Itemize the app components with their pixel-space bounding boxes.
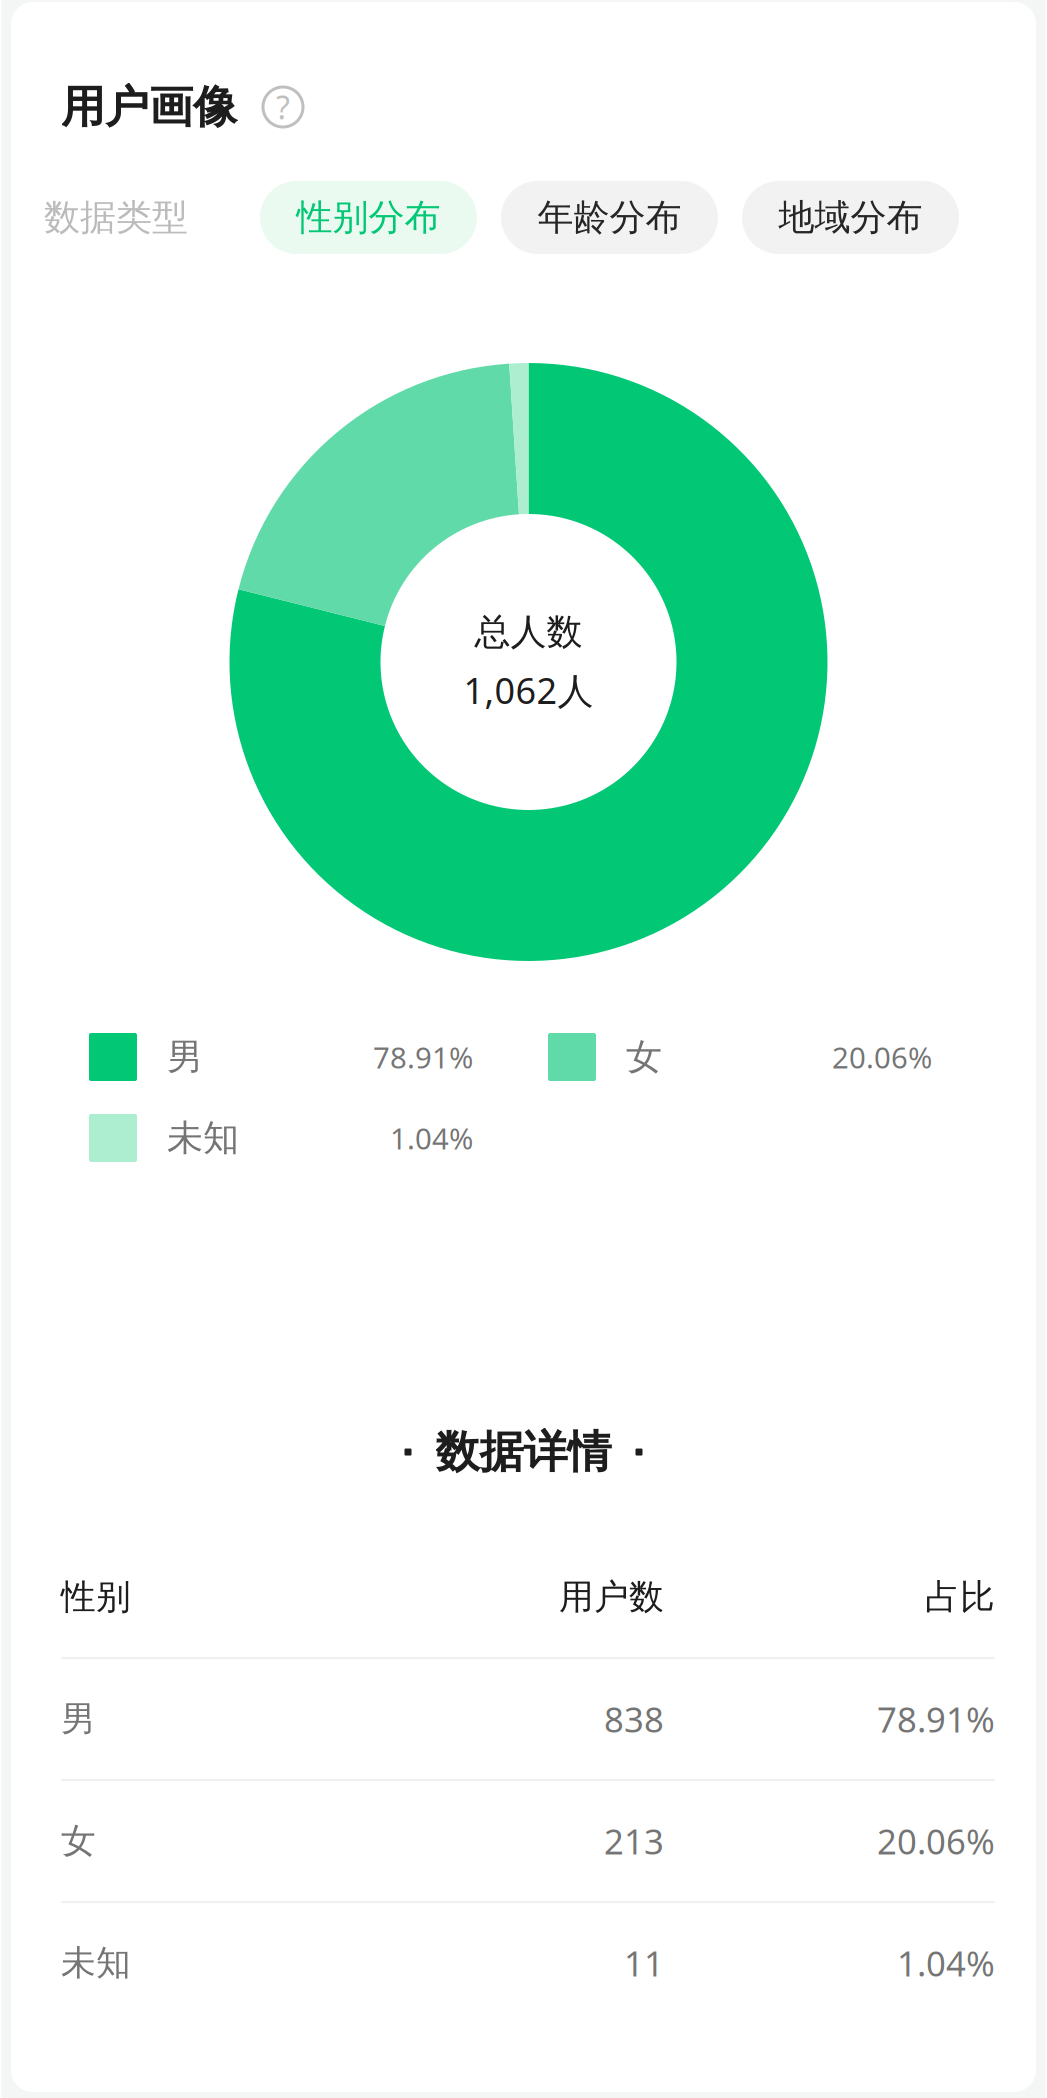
staticText: 女 (626, 1035, 662, 1079)
staticText: 838 (604, 1696, 664, 1742)
button[interactable]: 年龄分布 (501, 181, 718, 254)
staticText: 占比 (925, 1576, 995, 1618)
button[interactable]: 性别分布 (260, 181, 477, 254)
staticText: 用户数 (559, 1576, 664, 1618)
staticText: 未知 (61, 1942, 131, 1984)
staticText: ? (276, 86, 290, 128)
staticText: 女 (61, 1820, 96, 1862)
staticText: 11 (624, 1940, 664, 1986)
staticText: 男 (167, 1035, 203, 1079)
staticText: 用户画像 (61, 80, 237, 134)
staticText: 未知 (167, 1116, 239, 1160)
staticText: 性别 (61, 1576, 131, 1618)
staticText: 20.06% (832, 1037, 932, 1076)
staticText: 年龄分布 (537, 195, 681, 240)
staticText: 213 (604, 1818, 664, 1864)
staticText: 数据类型 (44, 195, 188, 240)
staticText: 1.04% (897, 1940, 995, 1986)
button[interactable]: 地域分布 (742, 181, 959, 254)
staticText: 性别分布 (296, 195, 440, 240)
staticText: 数据详情 (435, 1425, 611, 1479)
staticText: 地域分布 (778, 195, 922, 240)
staticText: 78.91% (877, 1696, 995, 1742)
staticText: 1.04% (390, 1118, 473, 1157)
staticText: 20.06% (877, 1818, 995, 1864)
staticText: 总人数 (474, 610, 582, 654)
button[interactable]: 用户画像说明 (237, 87, 303, 127)
staticText: 78.91% (373, 1037, 473, 1076)
staticText: 1,062人 (463, 666, 593, 714)
staticText: 男 (61, 1698, 96, 1740)
